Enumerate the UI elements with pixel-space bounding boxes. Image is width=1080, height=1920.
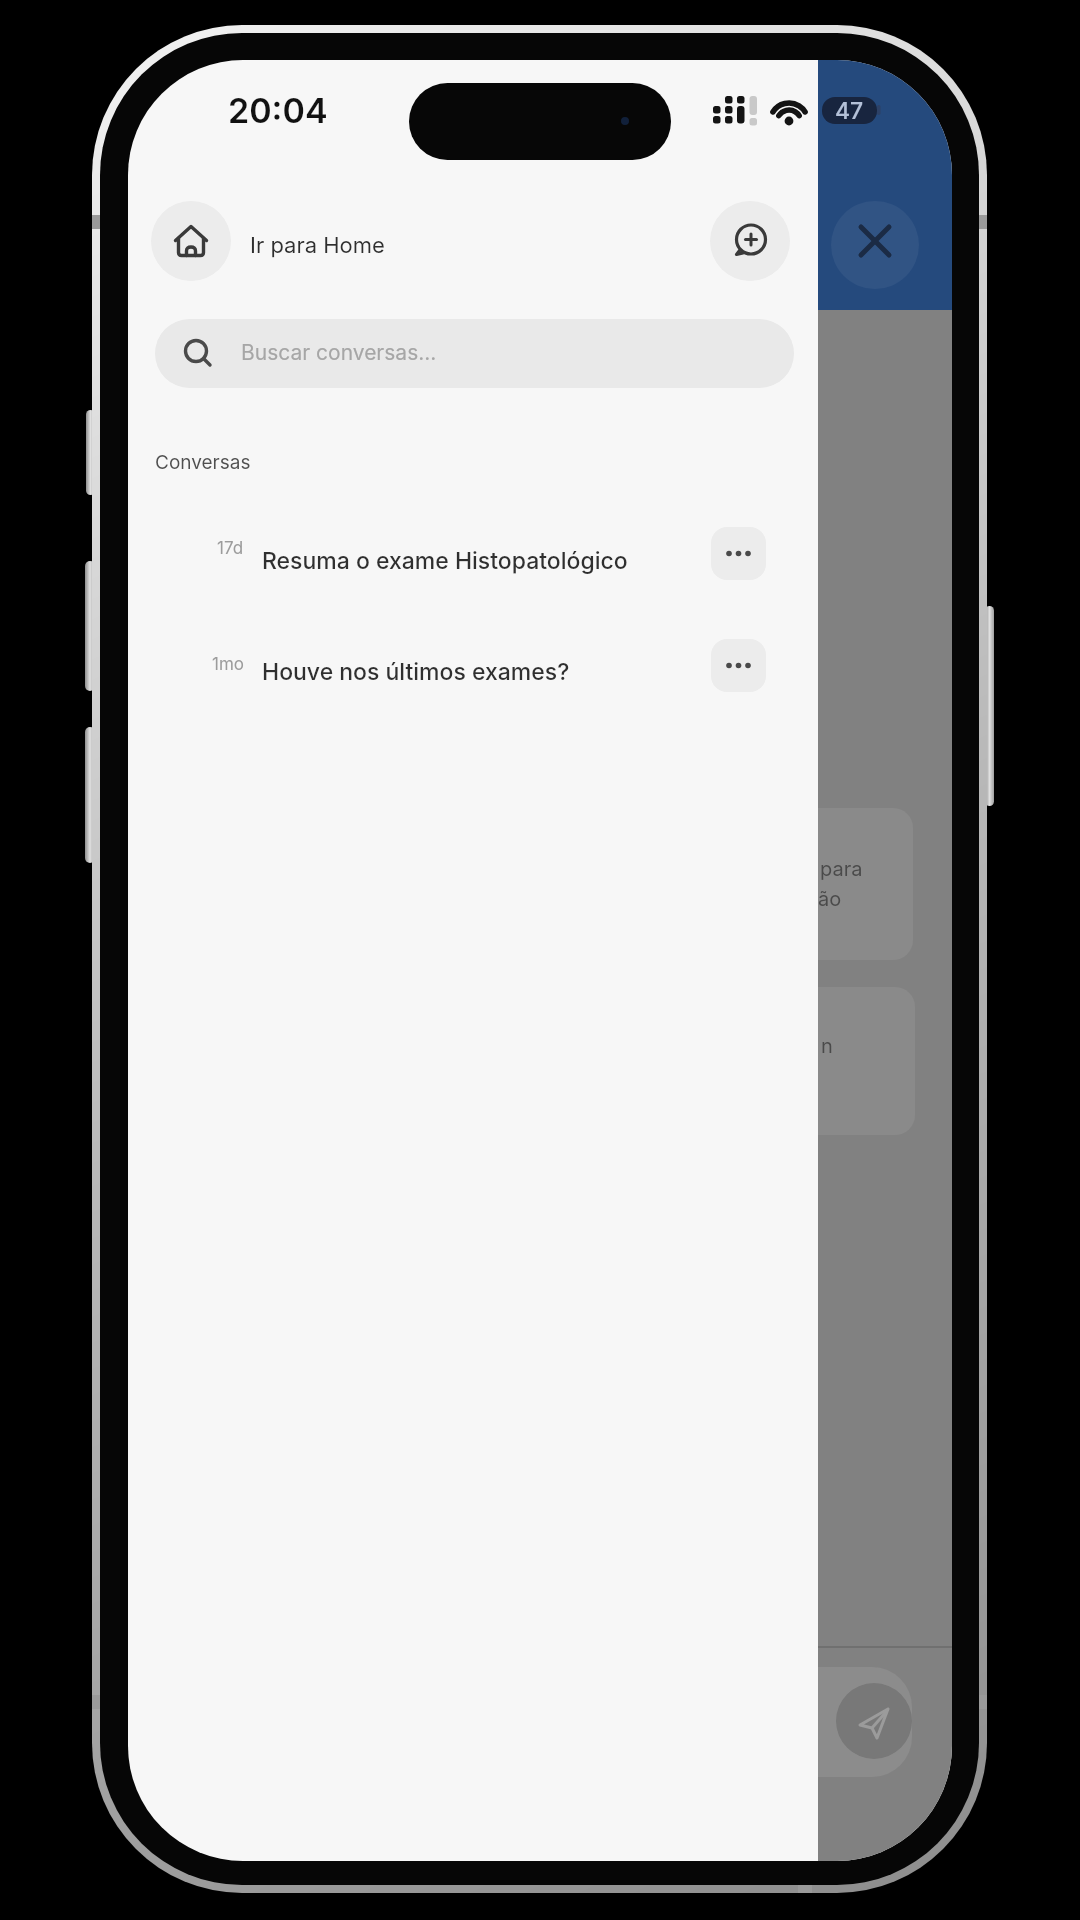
staticText: Conversas [155, 451, 251, 474]
button[interactable]: Resuma o exame Histopatológico [262, 541, 702, 581]
staticText: para [820, 857, 863, 881]
staticText: Ir para Home [250, 232, 385, 259]
staticText: ão [818, 887, 842, 911]
staticText: 17d [217, 538, 244, 559]
staticText: Resuma o exame Histopatológico [262, 547, 628, 575]
button[interactable]: Buscar conversas... [155, 319, 794, 388]
staticText: 47 [835, 97, 864, 124]
staticText: 20:04 [228, 90, 328, 131]
button[interactable] [151, 201, 231, 281]
button[interactable] [710, 201, 790, 281]
button[interactable] [845, 211, 905, 271]
button[interactable] [836, 1683, 912, 1759]
staticText: Buscar conversas... [241, 340, 437, 365]
staticText: n [821, 1034, 833, 1058]
staticText: Houve nos últimos exames? [262, 658, 570, 686]
button[interactable]: Houve nos últimos exames? [262, 652, 702, 692]
button[interactable] [711, 527, 766, 580]
staticText: 1mo [212, 654, 244, 675]
button[interactable] [711, 639, 766, 692]
